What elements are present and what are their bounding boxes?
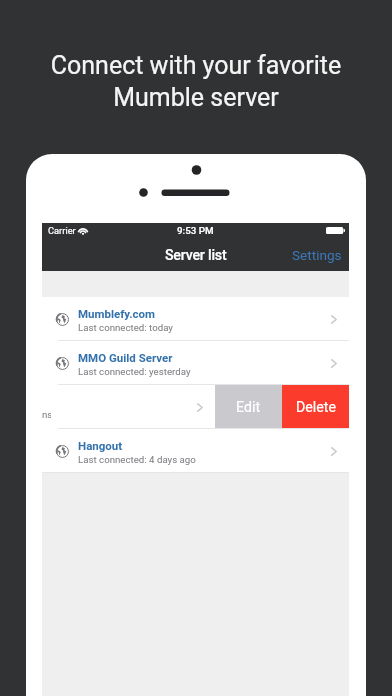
staticText: Delete <box>296 399 336 416</box>
button[interactable]: Edit <box>215 385 282 429</box>
button[interactable]: Delete <box>282 385 349 429</box>
staticText: 9:53 PM <box>177 225 214 236</box>
button[interactable]: Settings <box>282 244 349 270</box>
button[interactable]: MMO Guild Server <box>42 341 349 385</box>
staticText: Mumblefy.com <box>78 307 155 320</box>
staticText: Carrier <box>48 225 76 236</box>
staticText: Server list <box>165 247 227 264</box>
staticText: Last connected: today <box>78 322 173 333</box>
button[interactable]: Mumblefy.com <box>42 297 349 341</box>
button[interactable]: ns <box>42 385 215 429</box>
staticText: Settings <box>292 247 342 263</box>
staticText: Hangout <box>78 439 123 452</box>
staticText: ns <box>42 409 51 420</box>
staticText: Edit <box>236 399 261 416</box>
staticText: Last connected: yesterday <box>78 366 191 377</box>
button[interactable]: Hangout <box>42 429 349 473</box>
staticText: MMO Guild Server <box>78 351 173 364</box>
staticText: Last connected: 4 days ago <box>78 454 196 465</box>
staticText: Connect with your favorite Mumble server <box>0 51 392 112</box>
